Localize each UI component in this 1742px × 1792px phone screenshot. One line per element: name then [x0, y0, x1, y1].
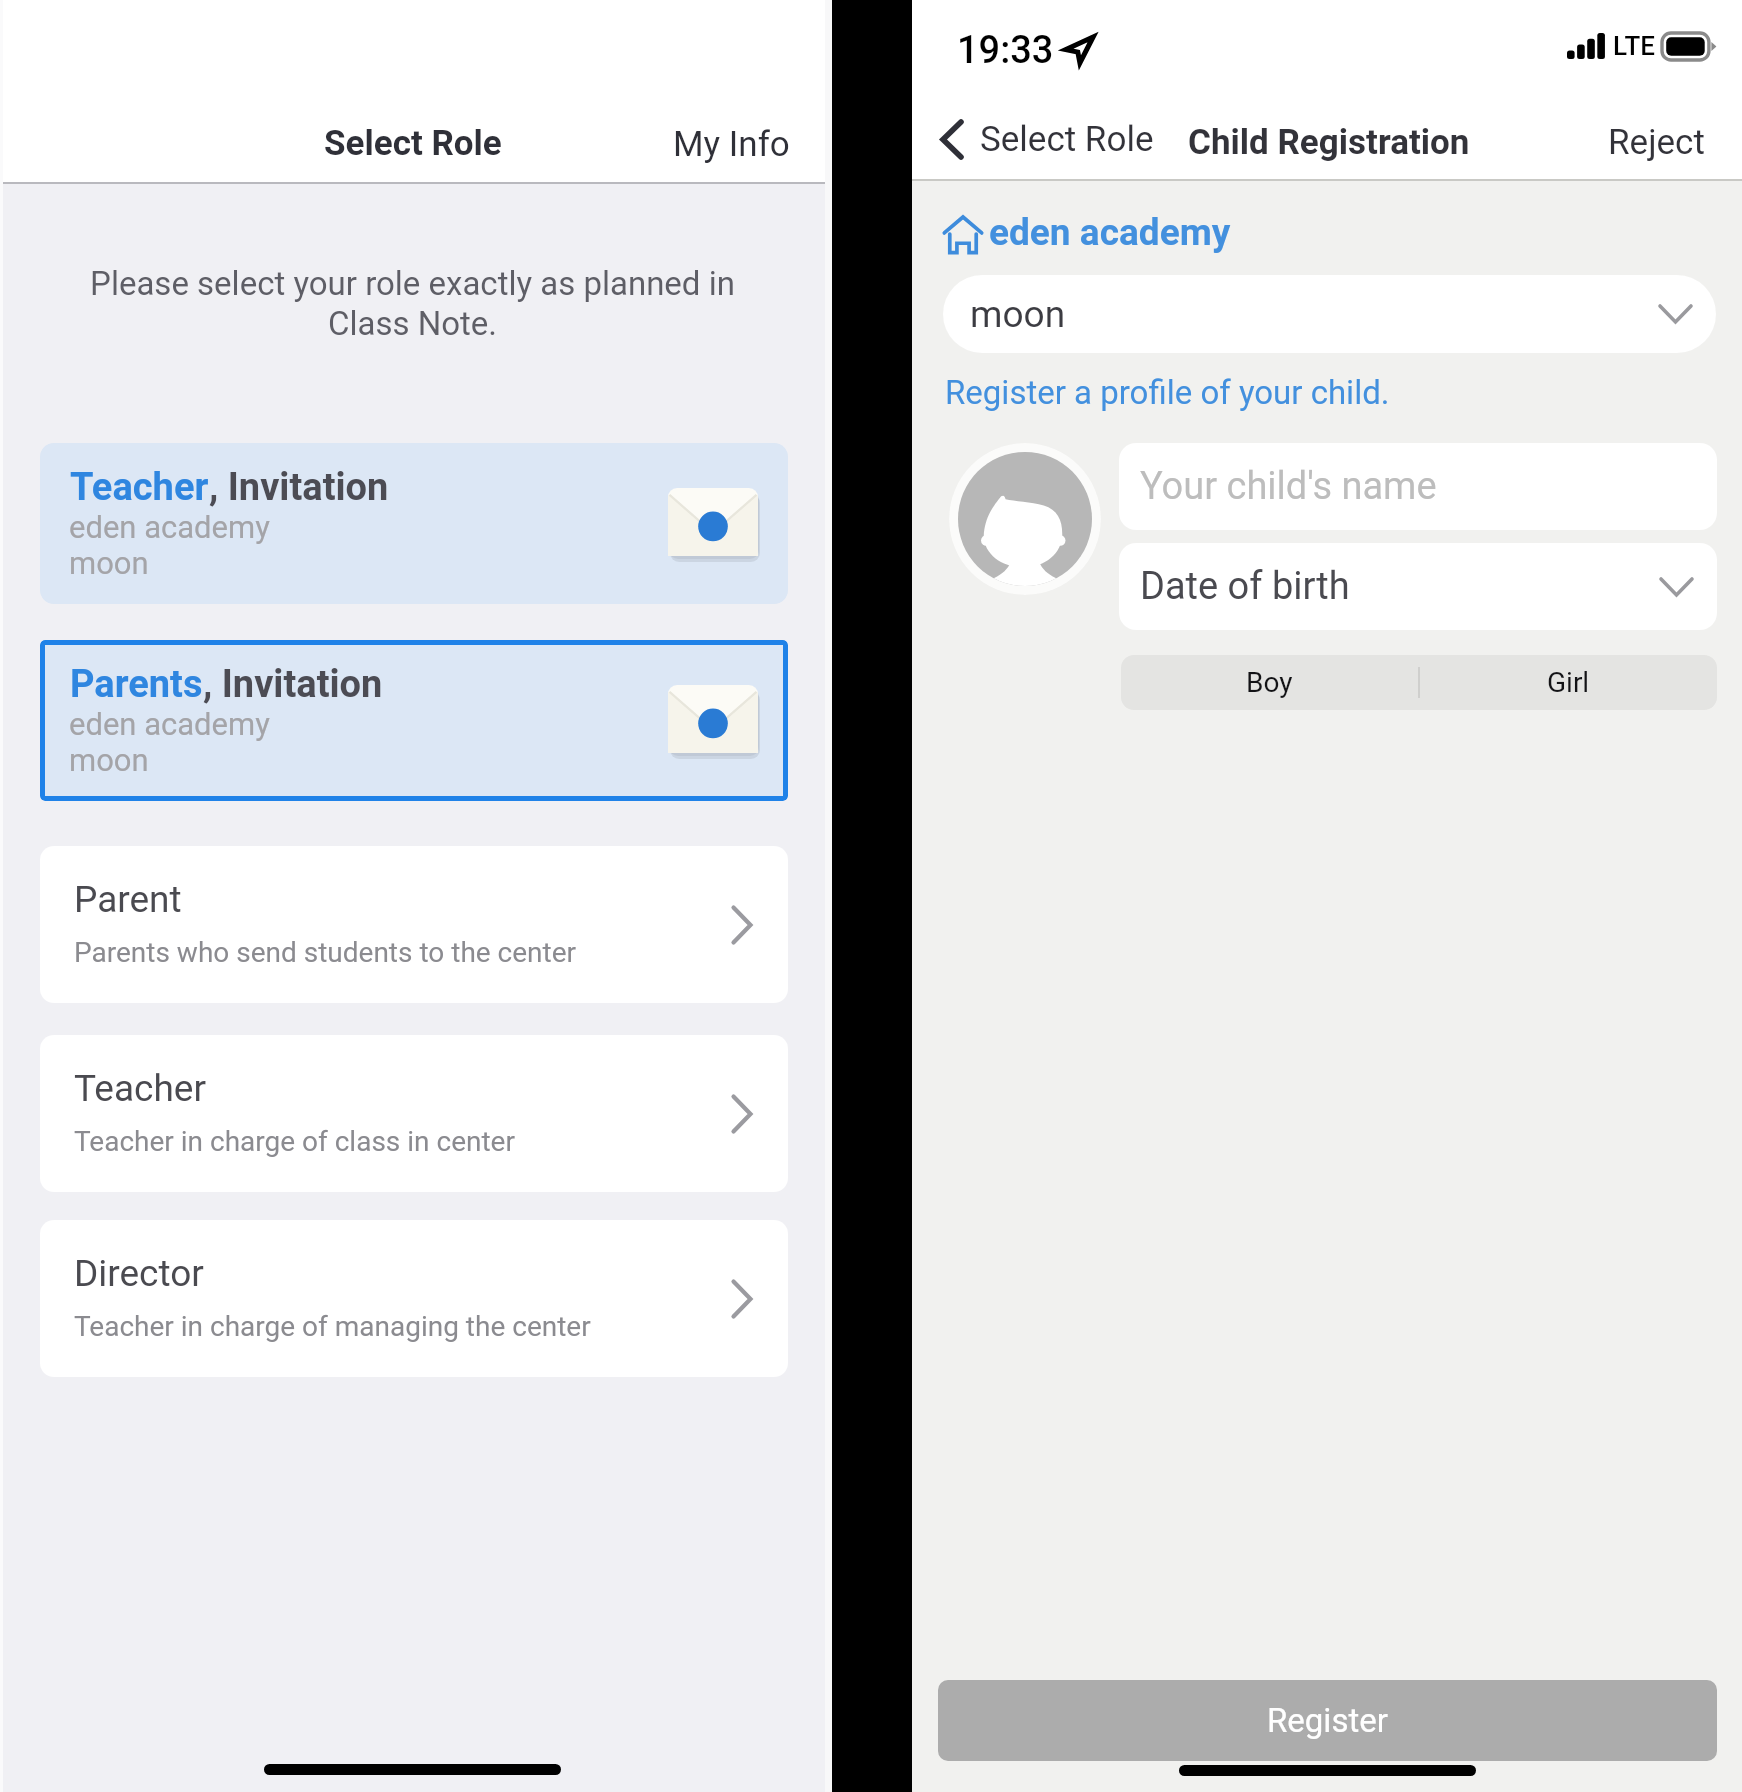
button[interactable]: My Info	[643, 110, 820, 179]
staticText: Select Role	[324, 123, 502, 164]
button[interactable]: Back to Select Role	[934, 115, 1162, 164]
staticText: Teacher	[74, 1067, 206, 1110]
staticText: My Info	[673, 124, 790, 165]
staticText: , Invitation	[209, 465, 389, 510]
staticText: Please select your role exactly as plann…	[0, 264, 825, 344]
staticText: LTE	[1613, 31, 1655, 61]
staticText: eden academy	[989, 211, 1231, 254]
button[interactable]: Parents	[40, 640, 788, 801]
button[interactable]: Director	[40, 1220, 788, 1377]
staticText: Reject	[1608, 122, 1705, 163]
staticText: Register a profile of your child.	[945, 373, 1390, 412]
staticText: moon	[69, 742, 149, 778]
staticText: eden academy	[69, 509, 270, 545]
staticText: Your child's name	[1140, 464, 1437, 509]
staticText: 19:33	[957, 28, 1054, 73]
staticText: , Invitation	[203, 662, 383, 707]
staticText: Teacher	[70, 465, 209, 510]
staticText: Girl	[1547, 666, 1590, 699]
staticText: Director	[74, 1252, 204, 1295]
button[interactable]: Reject	[1586, 110, 1727, 175]
staticText: Parents who send students to the center	[74, 936, 577, 969]
staticText: Teacher in charge of class in center	[74, 1125, 515, 1158]
staticText: Date of birth	[1140, 564, 1350, 609]
button[interactable]: Boy	[1121, 655, 1418, 710]
button[interactable]: Teacher	[40, 443, 788, 604]
button[interactable]: Girl	[1420, 655, 1717, 710]
button[interactable]: eden academy	[938, 208, 1235, 259]
staticText: Child Registration	[1188, 122, 1470, 163]
staticText: moon	[970, 293, 1066, 336]
staticText: moon	[69, 545, 149, 581]
staticText: Parent	[74, 878, 182, 921]
button[interactable]: Your child's name	[1119, 443, 1717, 530]
button[interactable]: Register	[938, 1680, 1717, 1761]
staticText: Select Role	[980, 119, 1154, 160]
staticText: eden academy	[69, 706, 270, 742]
button[interactable]: moon	[943, 275, 1716, 353]
button[interactable]: Teacher	[40, 1035, 788, 1192]
staticText: Teacher in charge of managing the center	[74, 1310, 591, 1343]
staticText: Register	[1267, 1701, 1388, 1740]
staticText: Boy	[1246, 666, 1293, 699]
button[interactable]: Choose child photo	[949, 443, 1101, 595]
button[interactable]: Parent	[40, 846, 788, 1003]
button[interactable]: Date of birth	[1119, 543, 1717, 630]
staticText: Parents	[70, 662, 203, 707]
